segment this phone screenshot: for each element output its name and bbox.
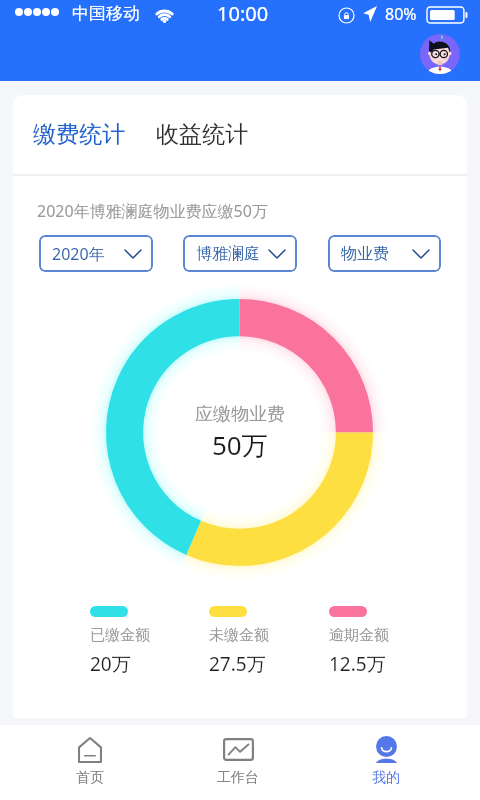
staticText: 已缴金额 <box>90 626 150 645</box>
button[interactable]: 缴费统计 <box>33 120 125 149</box>
button[interactable]: Profile avatar <box>420 34 460 74</box>
button[interactable]: 2020年 <box>39 235 153 272</box>
staticText: 80% <box>385 3 417 25</box>
staticText: 缴费统计 <box>33 120 125 149</box>
button[interactable]: 收益统计 <box>156 120 248 149</box>
staticText: 中国移动 <box>72 3 140 24</box>
button[interactable]: 工作台 <box>164 725 312 800</box>
button[interactable]: 物业费 <box>328 235 441 272</box>
staticText: 收益统计 <box>156 120 248 149</box>
staticText: 未缴金额 <box>209 626 269 645</box>
staticText: 我的 <box>372 769 400 787</box>
staticText: 27.5万 <box>209 651 266 677</box>
staticText: 首页 <box>76 769 104 787</box>
button[interactable]: 未缴金额 <box>209 606 269 677</box>
button[interactable]: 逾期金额 <box>329 606 389 677</box>
staticText: 应缴物业费 <box>195 403 285 426</box>
staticText: 20万 <box>90 651 131 677</box>
staticText: 50万 <box>212 427 268 463</box>
staticText: 工作台 <box>217 769 259 787</box>
button[interactable]: 博雅澜庭 <box>183 235 297 272</box>
staticText: 物业费 <box>341 244 389 264</box>
button[interactable]: 我的 <box>312 725 460 800</box>
staticText: 12.5万 <box>329 651 386 677</box>
button[interactable]: 首页 <box>16 725 164 800</box>
staticText: 博雅澜庭 <box>196 244 260 264</box>
button[interactable]: 已缴金额 <box>90 606 150 677</box>
staticText: 2020年 <box>52 243 105 265</box>
staticText: 逾期金额 <box>329 626 389 645</box>
staticText: 2020年博雅澜庭物业费应缴50万 <box>37 200 268 222</box>
staticText: 10:00 <box>217 0 269 27</box>
